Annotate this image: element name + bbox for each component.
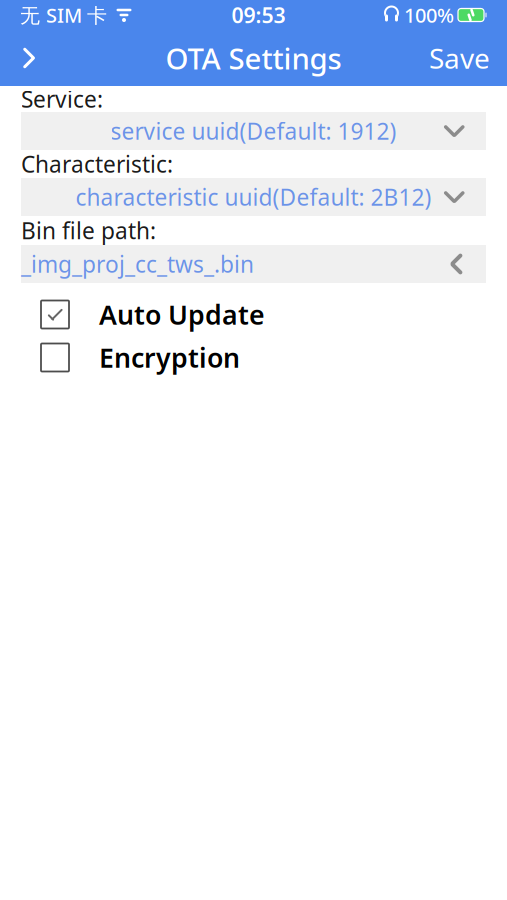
staticText: Auto Update <box>99 297 265 332</box>
button[interactable]: Encryption <box>21 336 486 379</box>
staticText: OTA Settings <box>165 38 341 77</box>
button[interactable]: Back <box>3 33 55 83</box>
staticText: _img_proj_cc_tws_.bin <box>21 249 254 279</box>
staticText: service uuid(Default: 1912) <box>110 116 396 146</box>
staticText: characteristic uuid(Default: 2B12) <box>75 182 431 212</box>
button[interactable]: _img_proj_cc_tws_.bin <box>21 245 486 283</box>
staticText: Save <box>429 39 490 77</box>
staticText: Encryption <box>99 340 240 375</box>
staticText: Bin file path: <box>21 215 156 245</box>
button[interactable]: service uuid(Default: 1912) <box>21 112 486 150</box>
button[interactable]: characteristic uuid(Default: 2B12) <box>21 178 486 216</box>
staticText: Characteristic: <box>21 149 173 179</box>
button[interactable]: Save <box>415 33 504 83</box>
staticText: 无 SIM 卡 <box>20 2 107 28</box>
staticText: Service: <box>21 84 103 114</box>
staticText: 100% <box>404 2 454 28</box>
staticText: 09:53 <box>231 1 285 29</box>
button[interactable]: Auto Update <box>21 293 486 336</box>
